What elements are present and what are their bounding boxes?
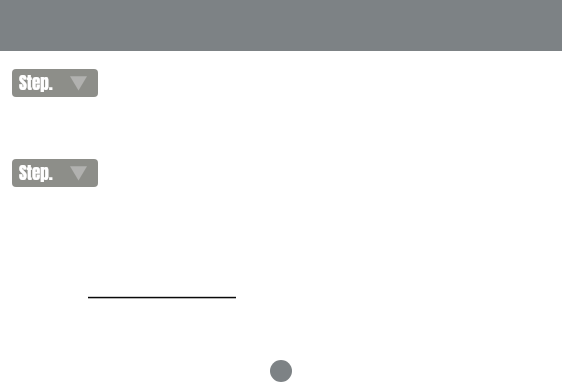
button[interactable]: Step.	[12, 69, 98, 97]
other: Expand step options	[70, 75, 87, 92]
button[interactable]: Step.	[12, 159, 98, 187]
staticText: Step.	[19, 160, 53, 186]
staticText: Step.	[19, 70, 53, 96]
other: Expand step options	[70, 165, 87, 182]
button[interactable]: Action	[270, 360, 292, 382]
